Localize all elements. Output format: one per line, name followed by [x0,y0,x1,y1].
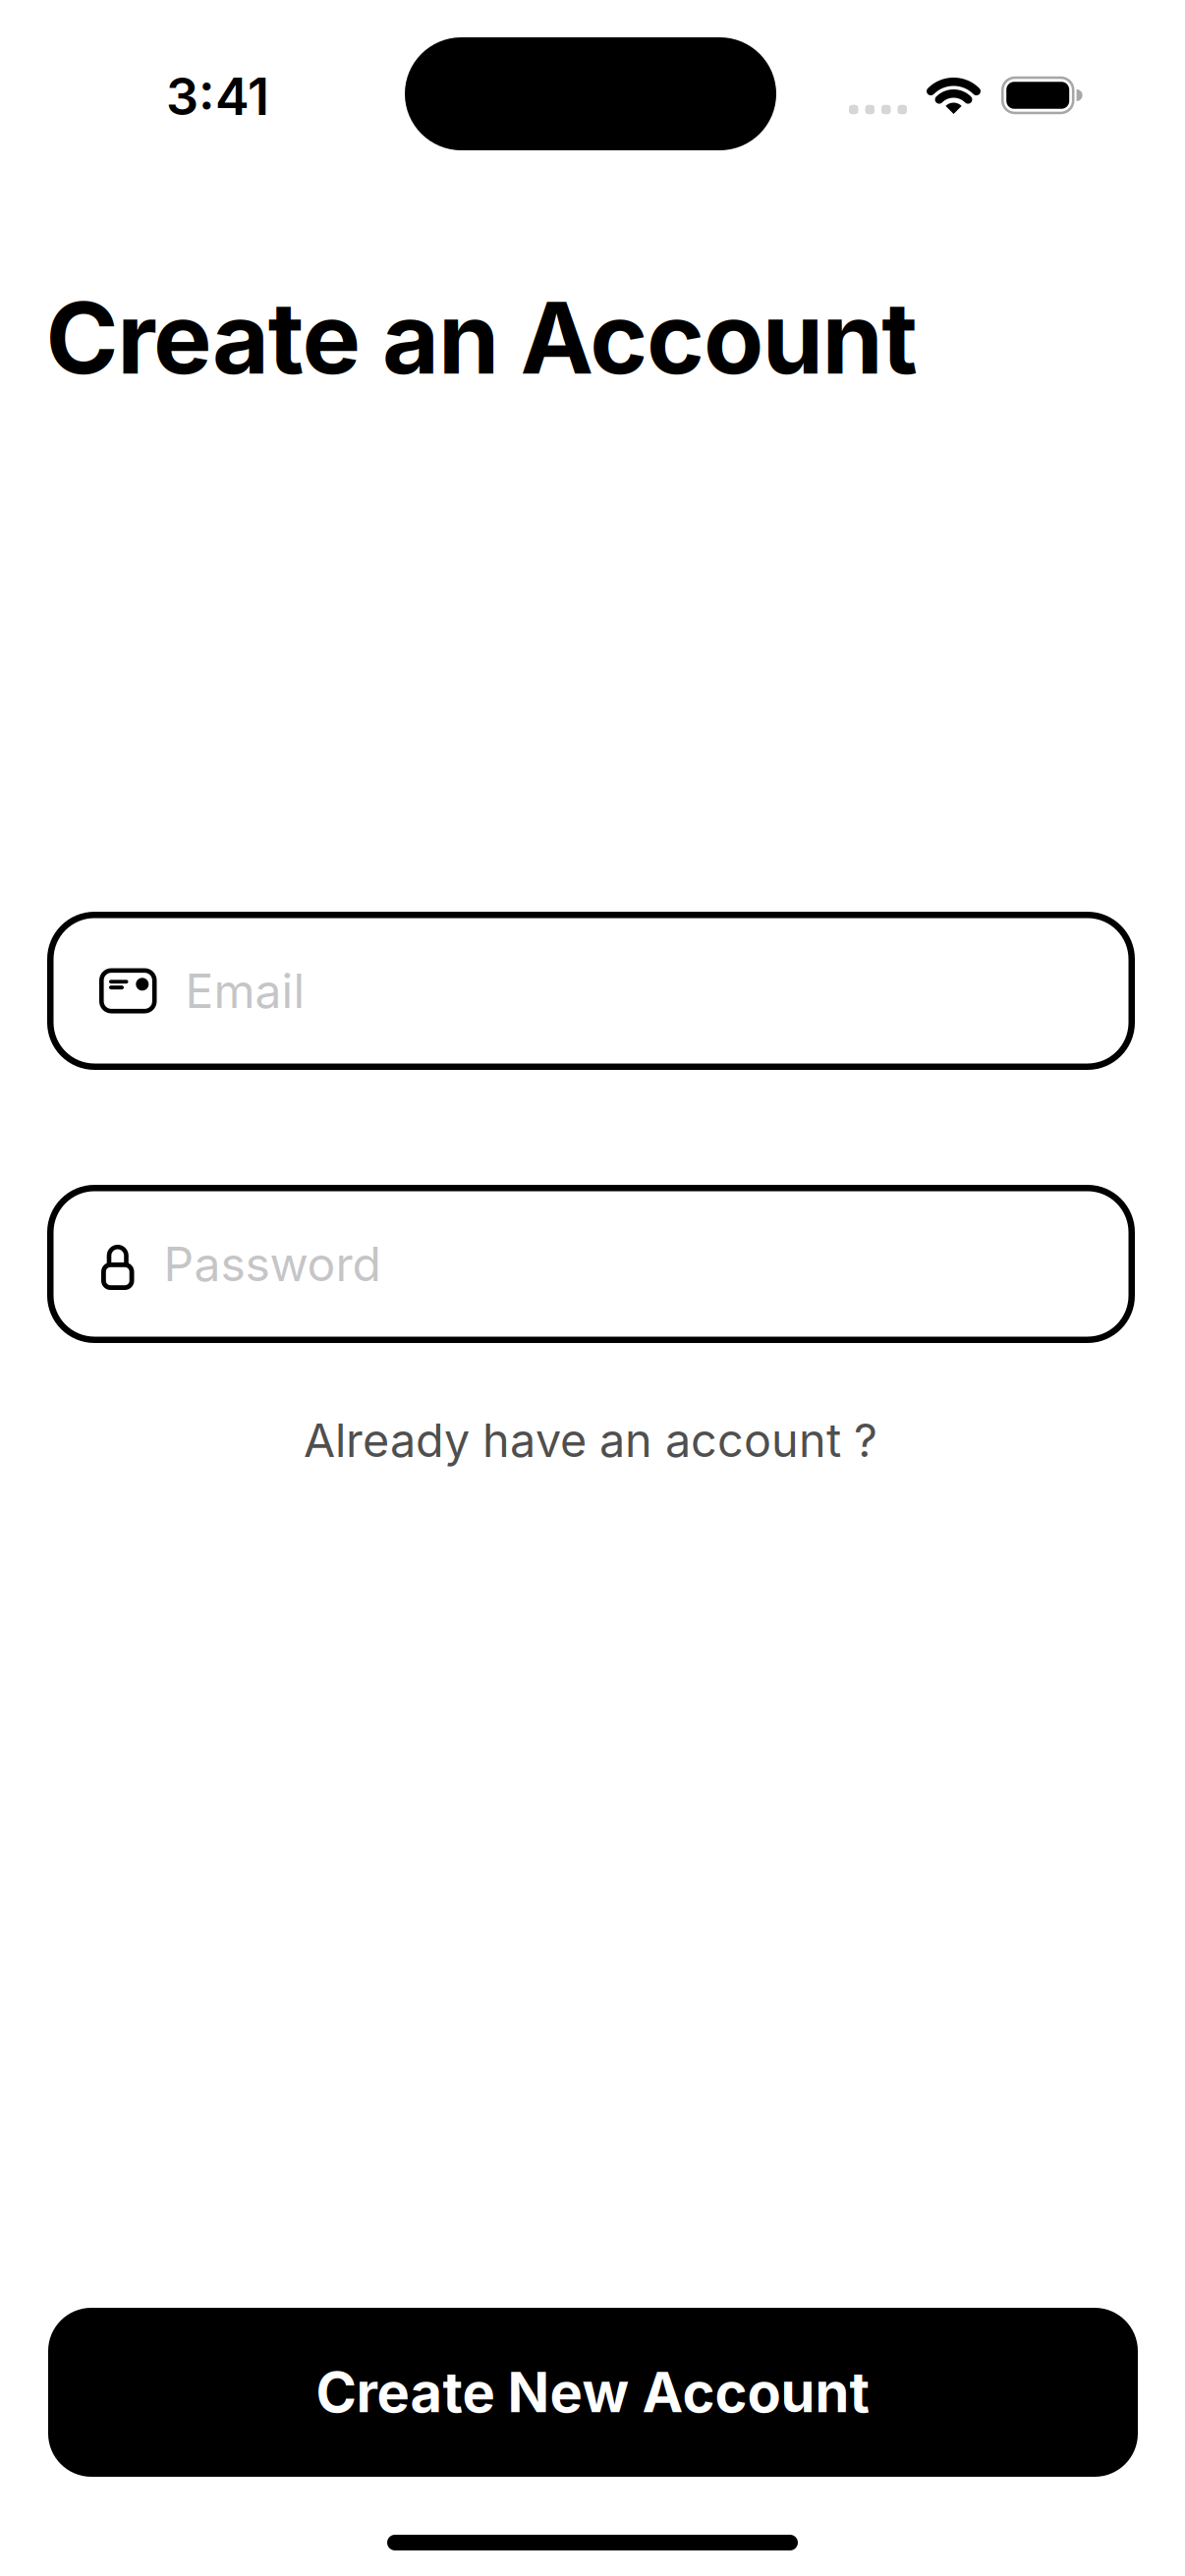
staticText: Already have an account ? [304,1413,877,1467]
staticText: Password [164,1236,381,1292]
staticText: 3:41 [166,66,269,126]
button[interactable]: Create New Account [48,2308,1138,2477]
button[interactable]: Email [47,912,1135,1070]
staticText: Email [185,963,305,1019]
button[interactable]: Already have an account ? [304,1413,877,1467]
staticText: Create an Account [46,280,918,396]
button[interactable]: Password [47,1185,1135,1343]
staticText: Create New Account [316,2360,870,2425]
